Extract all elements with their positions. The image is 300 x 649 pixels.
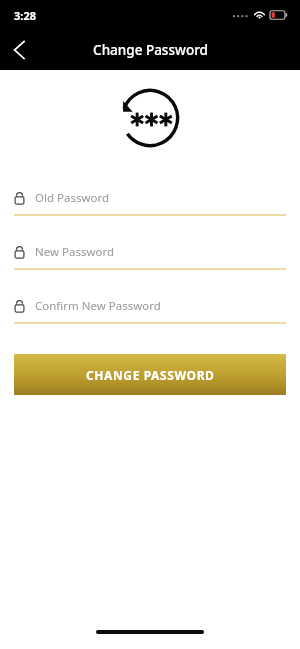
staticText: 3:28	[14, 8, 36, 23]
staticText: New Password	[35, 244, 115, 260]
button[interactable]: Old Password	[14, 190, 286, 216]
button[interactable]: Confirm New Password	[14, 298, 286, 324]
staticText: Change Password	[93, 41, 208, 59]
staticText: CHANGE PASSWORD	[86, 367, 215, 383]
staticText: Confirm New Password	[35, 298, 161, 314]
button[interactable]: New Password	[14, 244, 286, 270]
button[interactable]: CHANGE PASSWORD	[14, 354, 286, 395]
button[interactable]: Back	[0, 31, 38, 69]
staticText: Old Password	[35, 190, 110, 206]
